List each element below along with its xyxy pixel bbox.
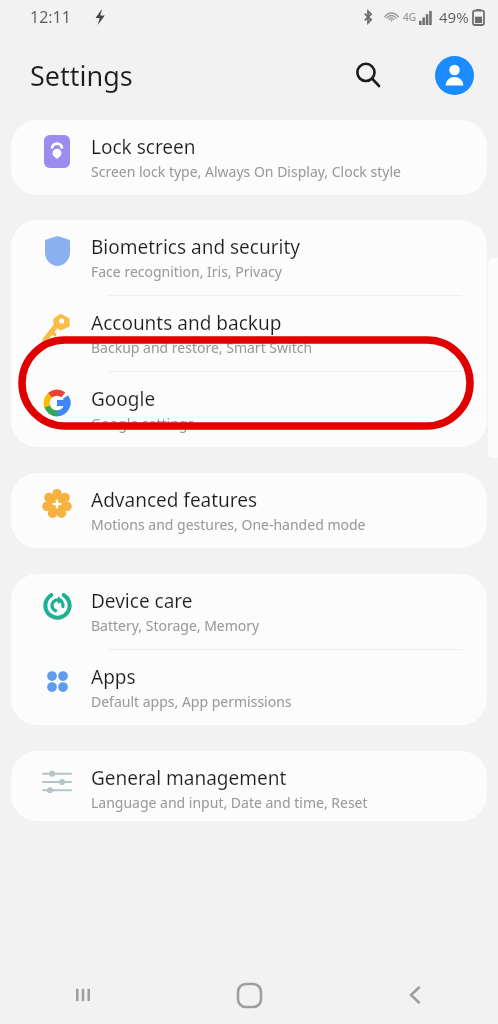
staticText: Settings: [30, 57, 133, 94]
staticText: Backup and restore, Smart Switch: [91, 338, 313, 357]
staticText: Default apps, App permissions: [91, 692, 292, 711]
button[interactable]: Accounts and backup: [11, 296, 487, 371]
button[interactable]: Google: [11, 372, 487, 447]
staticText: Device care: [91, 588, 193, 614]
staticText: Advanced features: [91, 487, 258, 513]
button[interactable]: Recents: [0, 966, 166, 1024]
button[interactable]: Home: [166, 966, 332, 1024]
button[interactable]: General management: [11, 751, 487, 812]
staticText: 12:11: [30, 6, 71, 28]
staticText: Language and input, Date and time, Reset: [91, 793, 368, 812]
button[interactable]: Apps: [11, 650, 487, 725]
staticText: 49%: [439, 7, 469, 27]
staticText: General management: [91, 765, 287, 791]
button[interactable]: Back: [332, 966, 498, 1024]
button[interactable]: Biometrics and security: [11, 220, 487, 295]
staticText: Google settings: [91, 414, 195, 433]
staticText: Apps: [91, 664, 136, 690]
button[interactable]: Search: [346, 53, 390, 97]
staticText: Lock screen: [91, 134, 196, 160]
staticText: Screen lock type, Always On Display, Clo…: [91, 162, 401, 181]
staticText: Accounts and backup: [91, 310, 282, 336]
staticText: Google: [91, 386, 156, 412]
button[interactable]: Lock screen: [11, 120, 487, 195]
button[interactable]: Account: [432, 53, 476, 97]
button[interactable]: Device care: [11, 574, 487, 649]
staticText: 4G: [403, 10, 416, 24]
staticText: Face recognition, Iris, Privacy: [91, 262, 282, 281]
staticText: Biometrics and security: [91, 234, 301, 260]
button[interactable]: Advanced features: [11, 473, 487, 548]
staticText: Motions and gestures, One-handed mode: [91, 515, 366, 534]
staticText: Battery, Storage, Memory: [91, 616, 260, 635]
